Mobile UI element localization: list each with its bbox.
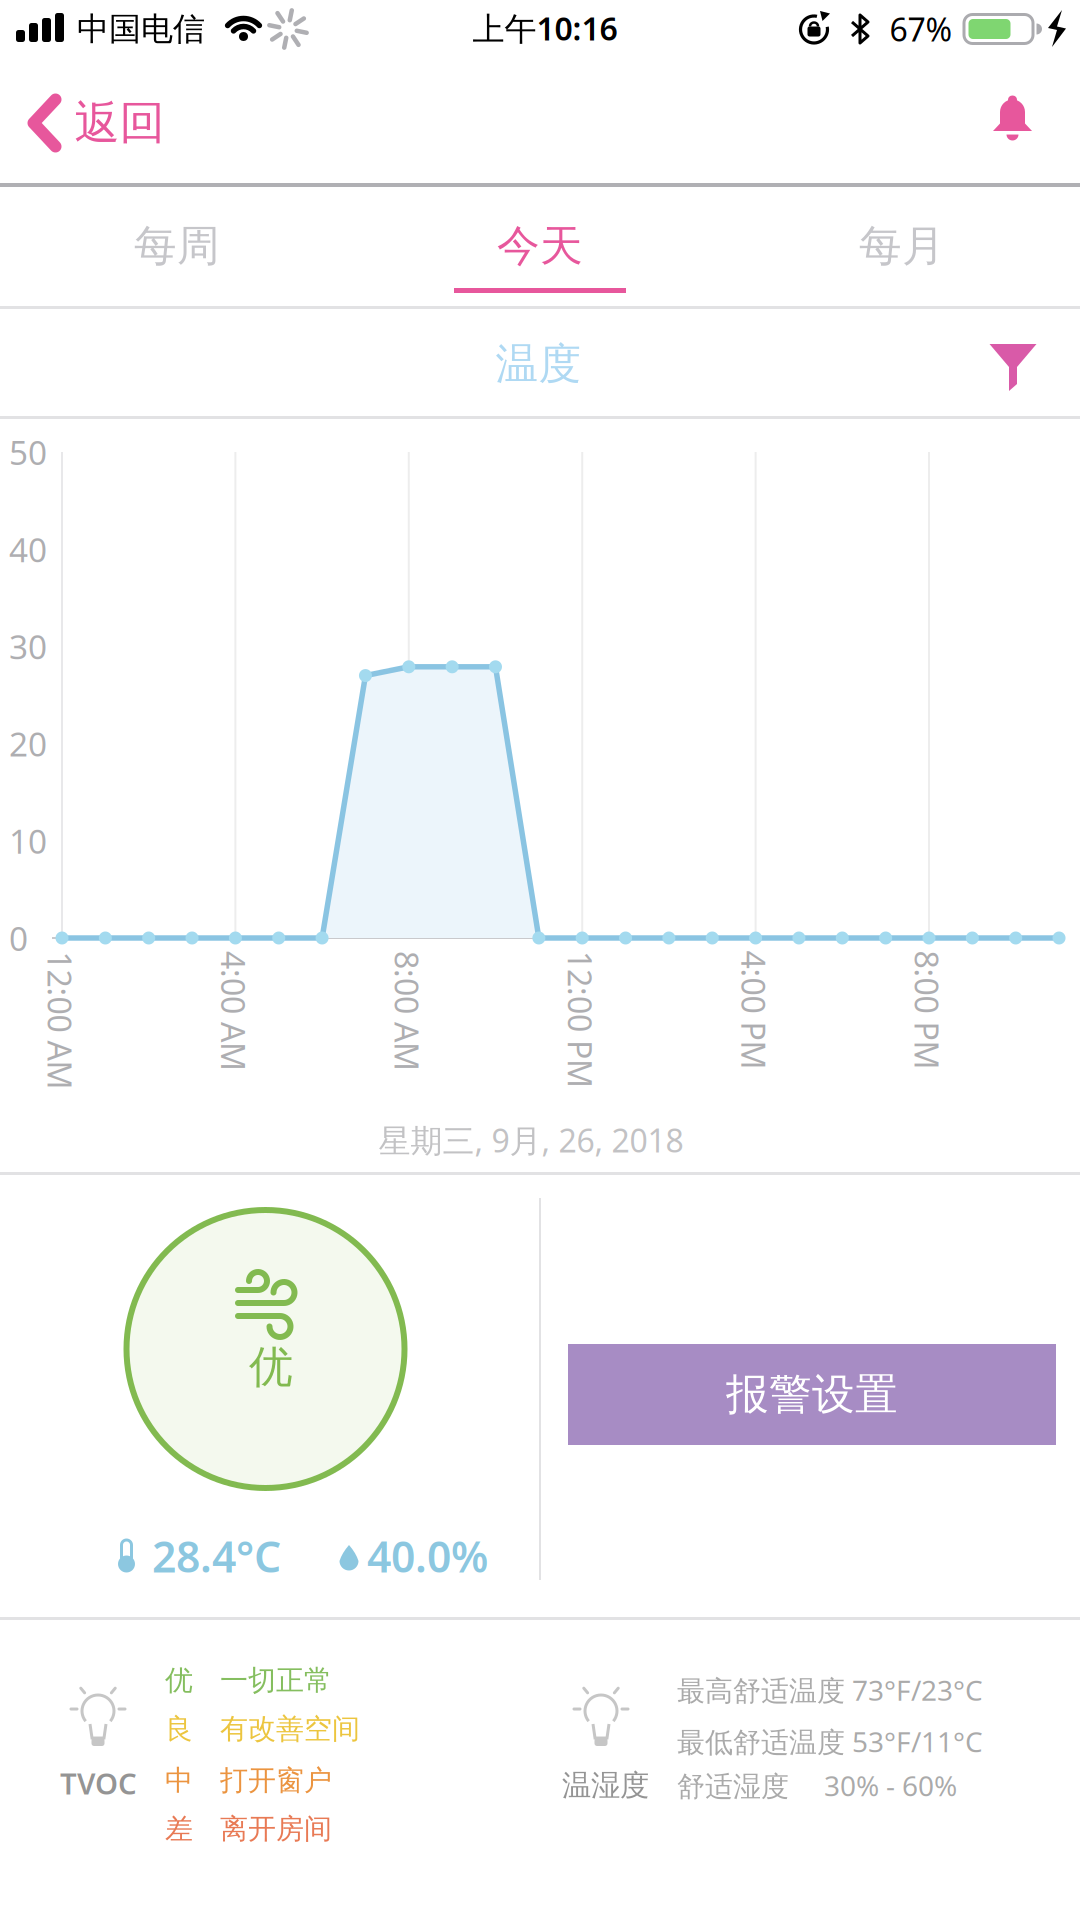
staticText: 返回: [74, 95, 164, 151]
staticText: 12:00 AM: [0, 999, 129, 1042]
button[interactable]: 每周: [22, 190, 332, 302]
staticText: 8:00 PM: [867, 989, 986, 1031]
staticText: 打开窗户: [220, 1763, 332, 1798]
button[interactable]: 每月: [747, 190, 1057, 302]
staticText: 12:00 PM: [512, 998, 649, 1041]
staticText: 舒适湿度 30% - 60%: [677, 1767, 957, 1804]
staticText: 每周: [134, 220, 220, 272]
staticText: 4:00 PM: [694, 989, 813, 1031]
staticText: 有改善空间: [220, 1712, 360, 1746]
staticText: 每月: [859, 220, 945, 272]
staticText: 最高舒适温度 73°F/23°C: [677, 1671, 983, 1709]
staticText: 优: [249, 1340, 293, 1394]
staticText: 温度: [495, 338, 581, 390]
staticText: 40.0%: [367, 1528, 488, 1584]
staticText: 优: [165, 1663, 193, 1698]
staticText: 10: [9, 819, 47, 863]
staticText: 今天: [497, 220, 583, 272]
staticText: 30: [9, 624, 47, 669]
staticText: 50: [9, 430, 47, 474]
staticText: 良: [165, 1712, 193, 1746]
staticText: 中: [165, 1763, 193, 1798]
staticText: 最低舒适温度 53°F/11°C: [677, 1723, 983, 1760]
staticText: 星期三, 9月, 26, 2018: [378, 1119, 683, 1161]
staticText: 报警设置: [726, 1368, 898, 1421]
staticText: 温湿度: [562, 1767, 649, 1803]
button[interactable]: 筛选: [989, 344, 1036, 391]
staticText: 离开房间: [220, 1812, 332, 1846]
staticText: 中国电信: [77, 9, 205, 49]
staticText: 28.4°C: [152, 1528, 281, 1584]
staticText: 8:00 AM: [347, 990, 467, 1032]
staticText: TVOC: [60, 1763, 137, 1802]
staticText: 差: [165, 1812, 193, 1846]
button[interactable]: 返回: [27, 95, 164, 151]
staticText: 67%: [889, 8, 952, 50]
button[interactable]: 报警设置: [568, 1344, 1056, 1445]
button[interactable]: 今天: [385, 190, 695, 302]
staticText: 一切正常: [220, 1663, 332, 1698]
staticText: 0: [9, 916, 28, 960]
staticText: 上午10:16: [472, 7, 617, 49]
staticText: 4:00 AM: [173, 990, 293, 1032]
staticText: 20: [9, 721, 47, 766]
staticText: 40: [9, 527, 47, 571]
button[interactable]: 通知: [990, 95, 1034, 141]
